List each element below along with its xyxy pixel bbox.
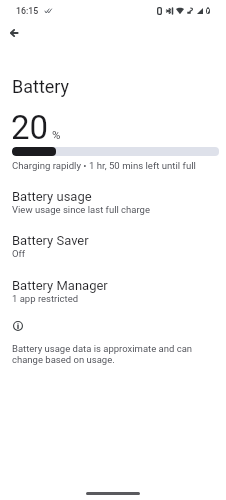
button[interactable]: Back [2, 21, 26, 45]
staticText: % [52, 128, 61, 141]
staticText: Battery Saver [12, 233, 89, 248]
staticText: Battery usage [12, 189, 92, 204]
staticText: Off [12, 248, 26, 259]
staticText: 20 [11, 108, 49, 147]
staticText: 1 app restricted [12, 293, 79, 304]
button[interactable]: Battery usage [0, 179, 226, 221]
staticText: Battery Manager [12, 278, 108, 293]
staticText: Battery usage data is approximate and ca… [12, 343, 197, 366]
button[interactable]: Battery Manager [0, 268, 226, 310]
staticText: Battery [12, 76, 70, 97]
button[interactable]: Battery Saver [0, 223, 226, 265]
staticText: 16:15 [16, 6, 39, 16]
staticText: View usage since last full charge [12, 204, 150, 215]
staticText: Charging rapidly • 1 hr, 50 mins left un… [12, 160, 196, 171]
